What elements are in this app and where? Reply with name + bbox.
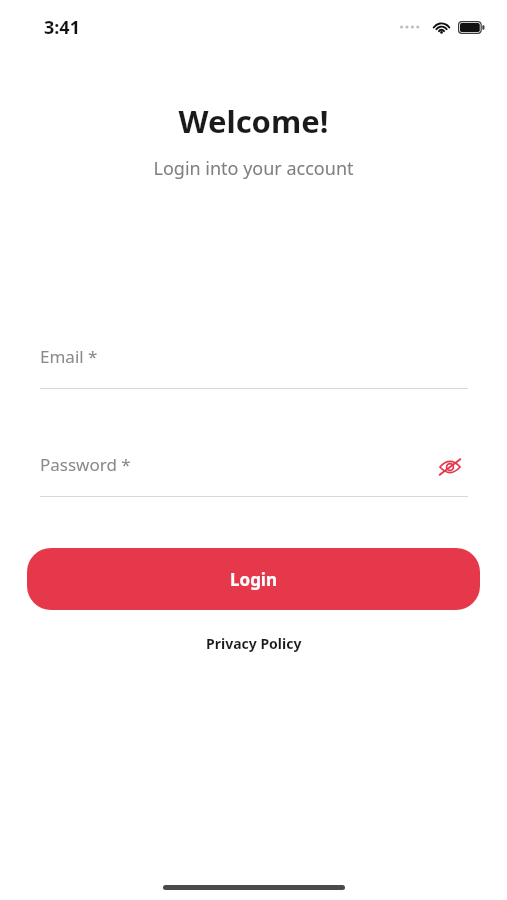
staticText: Welcome! (0, 100, 507, 142)
button[interactable]: Privacy Policy (198, 632, 310, 655)
staticText: Login (230, 568, 278, 591)
button[interactable]: Email * (40, 345, 468, 389)
staticText: Email * (40, 345, 98, 368)
staticText: Privacy Policy (206, 634, 302, 653)
button[interactable]: Password * (40, 453, 468, 497)
staticText: 3:41 (44, 15, 80, 40)
staticText: Password * (40, 453, 131, 476)
staticText: Login into your account (0, 156, 507, 181)
button[interactable]: Login (27, 548, 480, 610)
button[interactable]: Show password (432, 449, 468, 485)
